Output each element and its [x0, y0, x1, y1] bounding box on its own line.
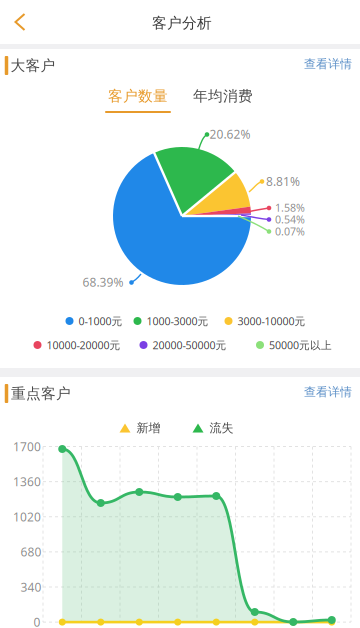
staticText: 大客户: [10, 56, 55, 74]
staticText: 流失: [209, 421, 233, 435]
staticText: 年均消费: [193, 87, 253, 105]
staticText: 新增: [136, 421, 160, 435]
button[interactable]: 年均消费: [185, 82, 261, 120]
staticText: 68.39%: [82, 274, 123, 290]
staticText: 客户分析: [152, 14, 212, 32]
staticText: 重点客户: [11, 384, 71, 402]
button[interactable]: 查看详情: [298, 379, 358, 405]
button[interactable]: Back: [0, 0, 40, 44]
staticText: 1020: [13, 509, 41, 525]
button[interactable]: 查看详情: [298, 51, 358, 77]
staticText: 1700: [13, 439, 41, 454]
staticText: 50000元以上: [269, 338, 332, 352]
staticText: 10000-20000元: [46, 338, 120, 352]
staticText: 查看详情: [304, 57, 352, 71]
staticText: 客户数量: [108, 87, 168, 105]
staticText: 8.81%: [266, 173, 300, 189]
staticText: 20000-50000元: [152, 338, 226, 352]
button[interactable]: 客户数量: [100, 82, 176, 120]
staticText: 查看详情: [304, 385, 352, 399]
staticText: 0.54%: [275, 212, 305, 226]
staticText: 1.58%: [275, 201, 305, 215]
staticText: 680: [20, 544, 41, 560]
staticText: 3000-10000元: [237, 314, 305, 328]
staticText: 0.07%: [275, 224, 305, 238]
staticText: 340: [20, 579, 41, 595]
staticText: 20.62%: [209, 126, 250, 142]
staticText: 1000-3000元: [146, 314, 208, 328]
staticText: 0: [33, 614, 40, 628]
staticText: 1360: [13, 474, 41, 490]
staticText: 0-1000元: [78, 314, 122, 328]
